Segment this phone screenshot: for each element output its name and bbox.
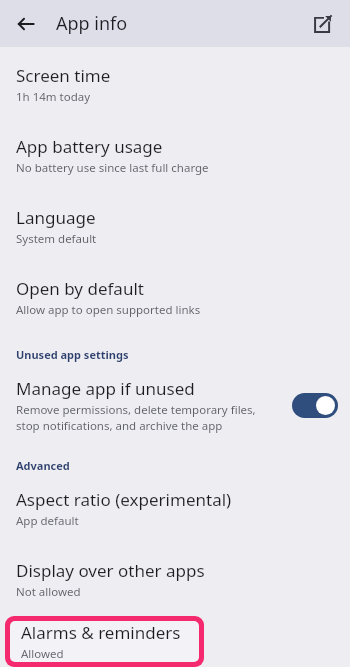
button[interactable]: Open by default	[16, 277, 334, 318]
button[interactable]: Alarms & reminders	[10, 621, 199, 662]
button[interactable]: Open in new window	[306, 7, 340, 41]
button[interactable]: Language	[16, 206, 334, 247]
staticText: 1h 14m today	[16, 89, 91, 105]
staticText: Manage app if unused	[16, 377, 195, 400]
button[interactable]: App battery usage	[16, 135, 334, 176]
staticText: Language	[16, 206, 96, 229]
staticText: Aspect ratio (experimental)	[16, 488, 232, 511]
staticText: System default	[16, 231, 97, 247]
staticText: Advanced	[16, 458, 70, 473]
staticText: App default	[16, 513, 79, 529]
button[interactable]: Screen time	[16, 64, 334, 105]
staticText: No battery use since last full charge	[16, 160, 209, 176]
button[interactable]: Display over other apps	[16, 559, 334, 600]
staticText: Display over other apps	[16, 559, 205, 582]
staticText: Screen time	[16, 64, 111, 87]
staticText: Allow app to open supported links	[16, 302, 201, 318]
staticText: Remove permissions, delete temporary fil…	[16, 402, 256, 433]
button[interactable]: Back	[8, 6, 44, 42]
staticText: Alarms & reminders	[21, 621, 181, 644]
button[interactable]: Aspect ratio (experimental)	[16, 488, 334, 529]
button[interactable]: Manage app if unused	[16, 377, 338, 433]
staticText: App battery usage	[16, 135, 163, 158]
staticText: Open by default	[16, 277, 144, 300]
staticText: Unused app settings	[16, 347, 129, 362]
staticText: Not allowed	[16, 584, 81, 600]
staticText: App info	[56, 11, 128, 36]
staticText: Allowed	[21, 646, 64, 662]
button[interactable]: Manage app if unused toggle	[292, 393, 338, 418]
